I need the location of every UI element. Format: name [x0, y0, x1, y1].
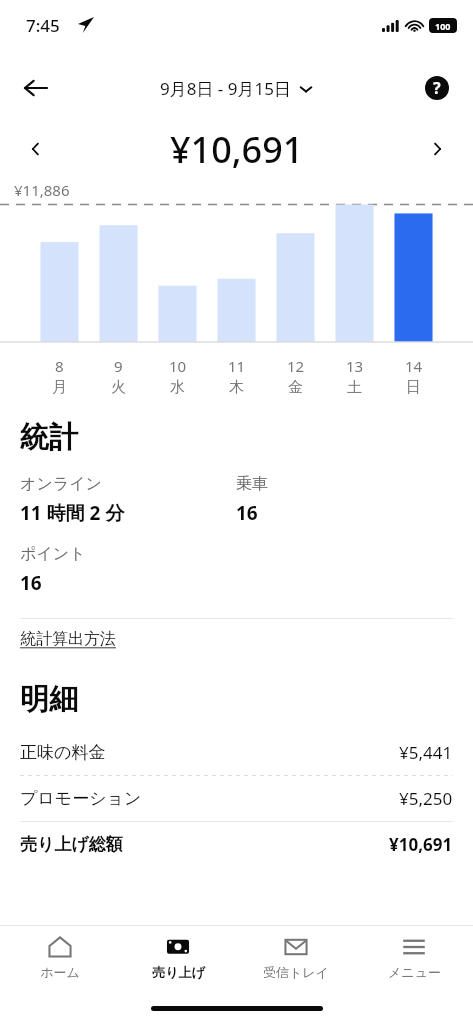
staticText: 10: [169, 356, 187, 376]
staticText: 12: [287, 356, 305, 376]
button[interactable]: Next week: [415, 127, 459, 171]
staticText: ホーム: [40, 964, 80, 980]
staticText: 乗車: [236, 474, 268, 494]
staticText: メニュー: [388, 964, 441, 980]
staticText: 火: [111, 378, 126, 397]
staticText: ¥5,250: [399, 787, 453, 810]
button[interactable]: ホーム: [0, 926, 119, 988]
staticText: 月: [52, 378, 67, 397]
button[interactable]: プロモーション: [20, 776, 453, 821]
staticText: 9: [114, 356, 123, 376]
button[interactable]: 売り上げ総額: [20, 822, 453, 867]
button[interactable]: 売り上げ: [119, 926, 237, 988]
staticText: 9月8日 - 9月15日: [160, 77, 291, 100]
staticText: オンライン: [20, 474, 102, 494]
button[interactable]: Help: [415, 66, 459, 110]
button[interactable]: 9月8日 - 9月15日: [160, 77, 313, 100]
staticText: 受信トレイ: [263, 964, 329, 980]
staticText: 水: [170, 378, 185, 397]
staticText: 木: [229, 378, 244, 397]
staticText: ¥11,886: [14, 180, 70, 200]
staticText: 16: [236, 500, 258, 526]
staticText: 明細: [20, 681, 78, 718]
staticText: 統計: [20, 419, 78, 456]
staticText: 11 時間 2 分: [20, 500, 125, 526]
button[interactable]: メニュー: [355, 926, 473, 988]
button[interactable]: Previous week: [14, 127, 58, 171]
staticText: 統計算出方法: [20, 629, 116, 649]
staticText: 売り上げ: [152, 964, 205, 980]
staticText: 11: [228, 356, 246, 376]
staticText: 正味の料金: [20, 742, 399, 763]
staticText: 14: [405, 356, 423, 376]
button[interactable]: Back: [14, 66, 58, 110]
staticText: 売り上げ総額: [20, 834, 389, 855]
staticText: 100: [435, 20, 451, 32]
staticText: ¥10,691: [170, 125, 304, 174]
staticText: 13: [346, 356, 364, 376]
button[interactable]: 受信トレイ: [237, 926, 355, 988]
staticText: 7:45: [26, 14, 60, 37]
staticText: ¥5,441: [399, 741, 453, 764]
button[interactable]: 正味の料金: [20, 730, 453, 775]
staticText: 土: [347, 378, 362, 397]
staticText: ?: [433, 77, 441, 99]
staticText: ¥10,691: [389, 833, 453, 856]
staticText: ポイント: [20, 544, 86, 564]
button[interactable]: 統計算出方法: [20, 619, 453, 659]
staticText: プロモーション: [20, 788, 399, 809]
staticText: 8: [55, 356, 64, 376]
staticText: 金: [288, 378, 303, 397]
staticText: 日: [406, 378, 421, 397]
staticText: 16: [20, 570, 42, 596]
